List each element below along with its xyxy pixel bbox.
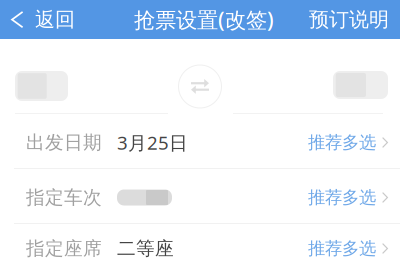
staticText: 推荐多选 (308, 238, 376, 259)
button[interactable]: 到达站 (233, 39, 400, 114)
staticText: 出发日期 (26, 131, 102, 154)
button[interactable]: 出发日期 (0, 114, 400, 168)
button[interactable]: 返回 (0, 1, 75, 38)
staticText: 抢票设置(改签) (134, 5, 274, 34)
staticText: 推荐多选 (308, 132, 376, 153)
button[interactable]: 出发站 (0, 39, 168, 114)
button[interactable]: 推荐多选 (294, 120, 400, 165)
button[interactable]: 预订说明 (309, 1, 400, 38)
staticText: 返回 (35, 7, 75, 32)
staticText: 指定车次 (26, 186, 102, 209)
button[interactable]: 指定车次 (0, 169, 400, 223)
button[interactable]: 交换出发与到达站 (178, 65, 221, 108)
staticText: 二等座 (117, 237, 174, 260)
staticText: 指定座席 (26, 237, 102, 260)
staticText: 3月25日 (117, 130, 188, 155)
staticText: 预订说明 (309, 7, 389, 32)
button[interactable]: 推荐多选 (294, 175, 400, 220)
button[interactable]: 推荐多选 (294, 226, 400, 270)
button[interactable]: 指定座席 (0, 224, 400, 270)
staticText: 推荐多选 (308, 187, 376, 208)
